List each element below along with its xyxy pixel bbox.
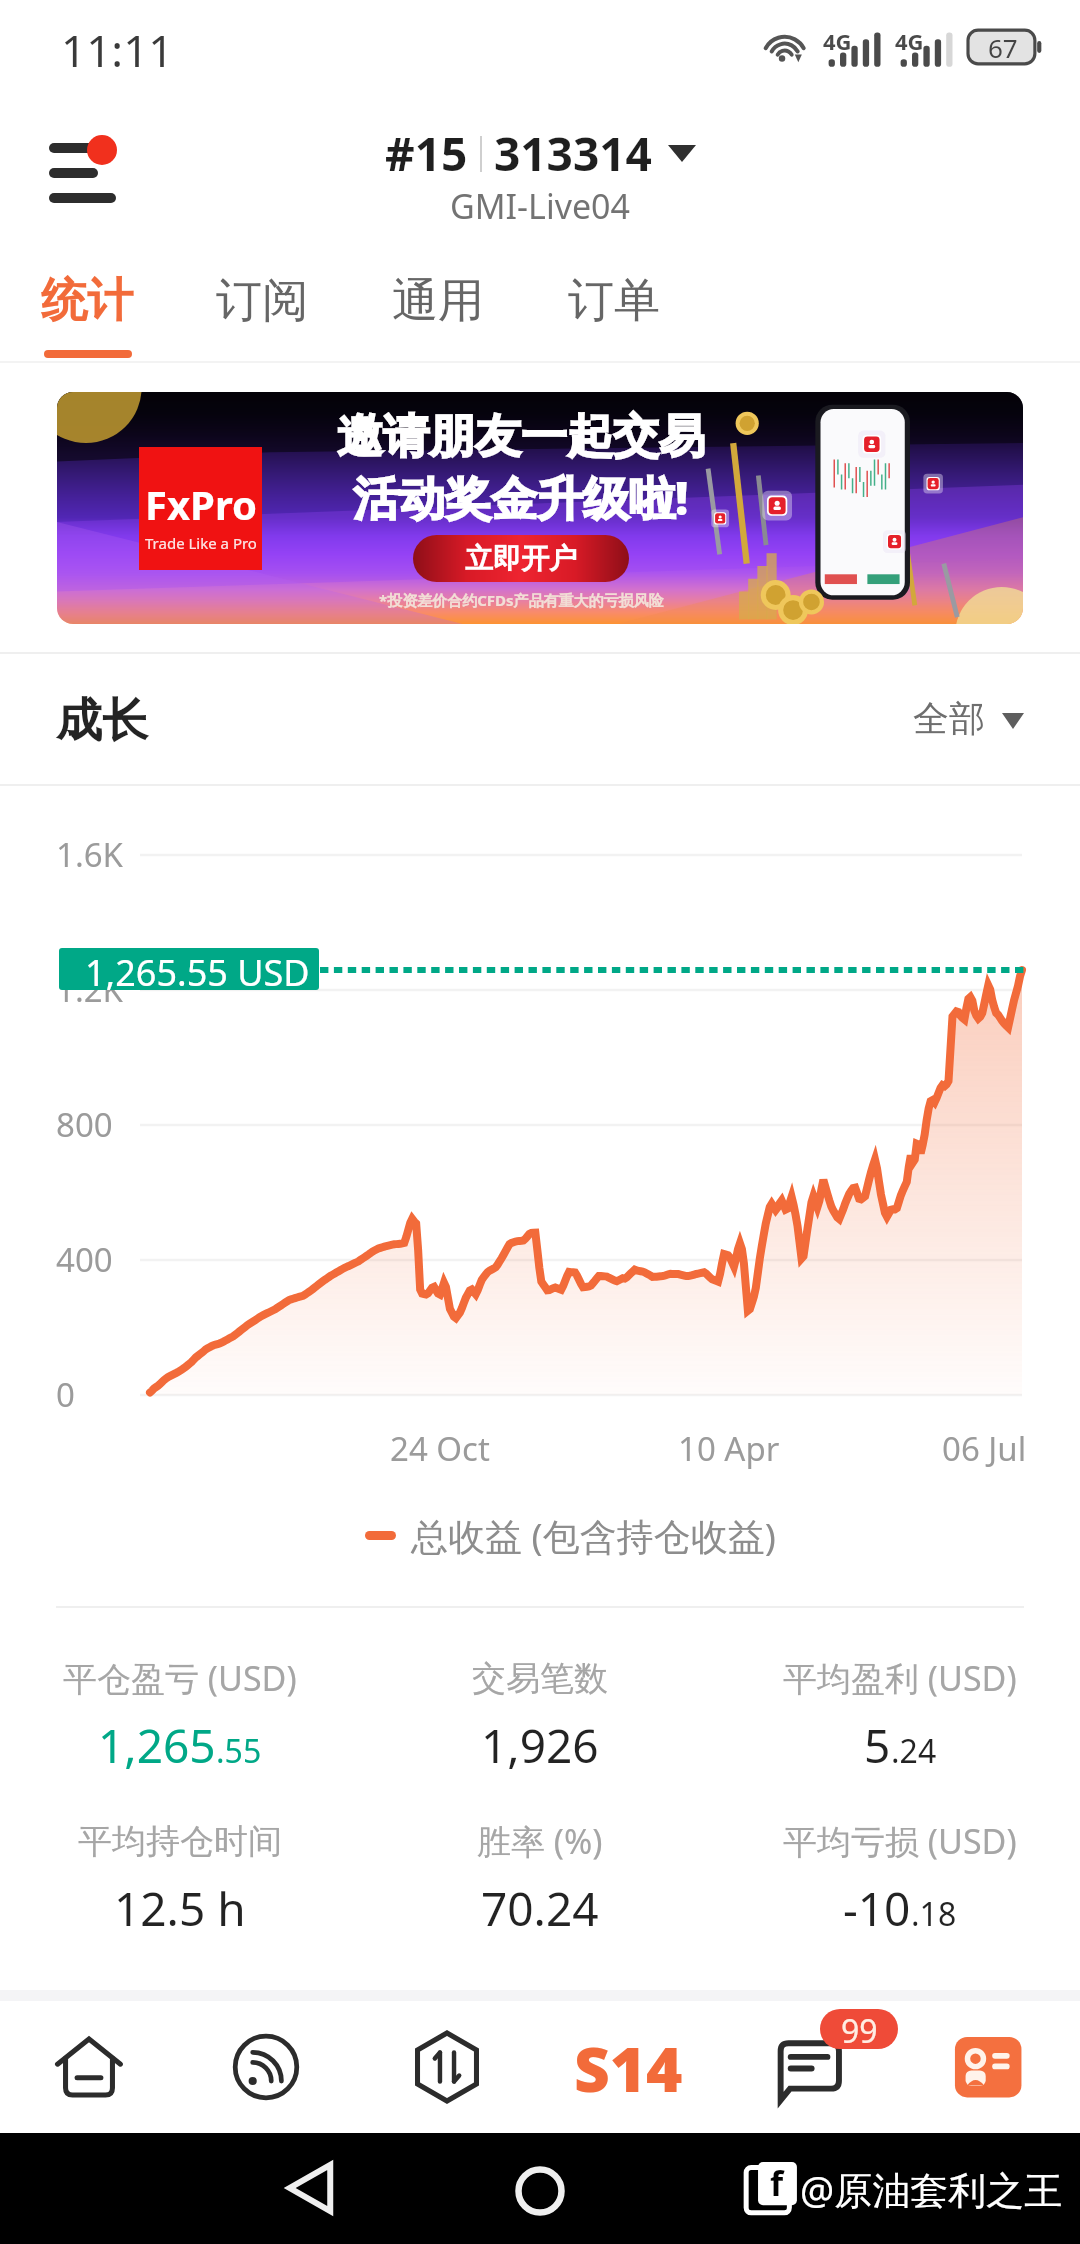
staticText: 5 <box>864 1714 891 1776</box>
button[interactable]: FxPro promotion <box>57 392 1023 624</box>
staticText: 成长 <box>56 692 148 750</box>
staticText: 0 <box>56 1372 75 1417</box>
button[interactable]: Signals <box>190 2001 342 2133</box>
staticText: 全部 <box>913 696 985 741</box>
staticText: 1,926 <box>481 1714 599 1776</box>
staticText: 订阅 <box>216 272 308 330</box>
staticText: Trade Like a Pro <box>145 533 257 553</box>
staticText: 邀请朋友一起交易 <box>337 408 705 466</box>
staticText: 平均盈利 (USD) <box>783 1655 1017 1701</box>
staticText: 平均亏损 (USD) <box>783 1818 1017 1864</box>
staticText: f <box>770 2160 784 2206</box>
staticText: 800 <box>56 1102 113 1147</box>
staticText: 99 <box>841 2009 878 2049</box>
staticText: 1,265.55 USD <box>85 948 310 990</box>
button[interactable]: 订阅 <box>174 248 350 360</box>
staticText: .24 <box>891 1729 937 1773</box>
staticText: 12.5 h <box>114 1877 246 1939</box>
staticText: 313314 <box>494 122 652 185</box>
staticText: 统计 <box>41 272 133 330</box>
staticText: 1.6K <box>56 832 124 877</box>
button[interactable]: Trade <box>371 2001 523 2133</box>
staticText: .18 <box>911 1892 957 1936</box>
button[interactable]: 全部 <box>913 696 1024 741</box>
staticText: 活动奖金升级啦! <box>353 466 689 529</box>
staticText: 总收益 (包含持仓收益) <box>411 1510 776 1561</box>
staticText: 10 Apr <box>678 1426 780 1471</box>
staticText: 立即开户 <box>465 541 577 576</box>
staticText: #15 <box>385 122 468 185</box>
staticText: GMI-Live04 <box>450 183 630 229</box>
staticText: 1,265 <box>98 1714 216 1776</box>
staticText: 1.2K <box>56 967 124 1012</box>
button[interactable]: 统计 <box>0 248 175 360</box>
staticText: @原油套利之王 <box>800 2163 1063 2215</box>
staticText: 400 <box>56 1237 113 1282</box>
staticText: 通用 <box>392 272 484 330</box>
staticText: .55 <box>216 1729 262 1773</box>
staticText: 67 <box>988 30 1018 65</box>
staticText: 06 Jul <box>942 1426 1027 1471</box>
button[interactable]: 通用 <box>350 248 526 360</box>
button[interactable]: Home <box>13 2001 165 2133</box>
staticText: 交易笔数 <box>472 1657 608 1700</box>
staticText: 11:11 <box>61 20 174 80</box>
button[interactable]: #15 <box>379 120 702 187</box>
button[interactable]: Profile <box>912 2001 1064 2133</box>
button[interactable]: Menu <box>22 112 140 208</box>
staticText: 胜率 (%) <box>477 1818 603 1864</box>
button[interactable]: Messages <box>732 2001 884 2133</box>
staticText: 4G <box>895 26 924 56</box>
button[interactable]: 订单 <box>526 248 702 360</box>
staticText: 70.24 <box>481 1877 599 1939</box>
button[interactable]: Back <box>268 2146 352 2230</box>
button[interactable]: Home <box>498 2149 582 2233</box>
staticText: 平仓盈亏 (USD) <box>63 1655 297 1701</box>
staticText: 订单 <box>568 272 660 330</box>
staticText: 24 Oct <box>390 1426 490 1471</box>
staticText: *投资差价合约CFDs产品有重大的亏损风险 <box>379 590 664 610</box>
staticText: S14 <box>574 2026 683 2110</box>
staticText: 平均持仓时间 <box>78 1820 282 1863</box>
staticText: FxPro <box>145 477 257 531</box>
staticText: 4G <box>823 26 852 56</box>
button[interactable]: 立即开户 <box>413 535 629 582</box>
button[interactable]: S14 <box>548 2001 708 2133</box>
staticText: -10 <box>843 1877 911 1939</box>
